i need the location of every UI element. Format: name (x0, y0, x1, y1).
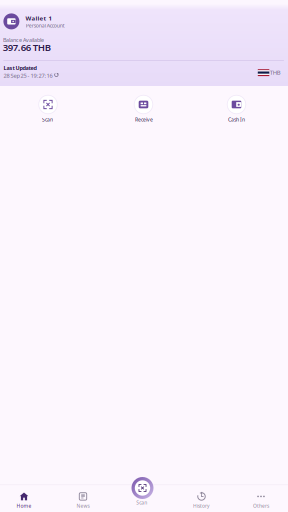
button[interactable]: Receive (134, 95, 153, 114)
staticText: Receive (135, 116, 153, 123)
button[interactable]: Scan (131, 477, 153, 499)
button[interactable]: Cash In (227, 95, 246, 114)
staticText: Wallet 1 (25, 14, 51, 22)
staticText: Personal Account (26, 22, 65, 29)
button[interactable]: News (61, 490, 105, 511)
staticText: Home (16, 502, 31, 509)
staticText: Scan (42, 116, 53, 123)
staticText: THB (270, 69, 281, 77)
staticText: Last Updated (3, 64, 36, 72)
button[interactable]: History (179, 490, 223, 511)
button[interactable]: Others (239, 490, 283, 511)
staticText: News (76, 502, 89, 509)
staticText: Balance Available (3, 36, 44, 43)
staticText: Cash In (228, 116, 245, 123)
staticText: Scan (136, 499, 147, 506)
staticText: 397.66 THB (3, 41, 51, 54)
staticText: History (193, 502, 210, 509)
button[interactable]: Home (2, 490, 46, 511)
button[interactable]: Scan (39, 95, 57, 114)
staticText: 28 Sep 25 - 19:27:16 (3, 72, 52, 79)
staticText: Others (253, 502, 269, 509)
